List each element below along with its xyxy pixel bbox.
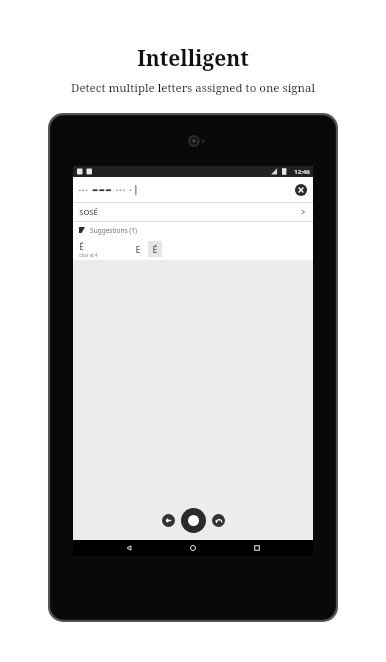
- button[interactable]: É: [148, 241, 162, 257]
- button[interactable]: Back: [121, 540, 137, 556]
- staticText: É: [152, 243, 158, 255]
- button[interactable]: É: [73, 238, 313, 260]
- staticText: É: [79, 241, 84, 252]
- button[interactable]: Clear input: [73, 177, 313, 202]
- staticText: SOSÉ: [79, 207, 98, 217]
- button[interactable]: Recent apps: [249, 540, 265, 556]
- button[interactable]: E: [131, 241, 145, 257]
- staticText: 12:46: [294, 168, 310, 176]
- button[interactable]: Signal key: [181, 508, 206, 533]
- staticText: Detect multiple letters assigned to one …: [71, 80, 315, 96]
- staticText: Suggestions (1): [90, 226, 137, 235]
- button[interactable]: Home: [185, 540, 201, 556]
- staticText: Intelligent: [137, 44, 249, 73]
- button[interactable]: Clear input: [295, 184, 307, 196]
- button[interactable]: SOSÉ: [73, 203, 313, 221]
- staticText: E: [135, 243, 141, 255]
- button[interactable]: Undo: [212, 514, 225, 527]
- staticText: char at 4: [79, 252, 98, 258]
- button[interactable]: Backspace: [162, 514, 175, 527]
